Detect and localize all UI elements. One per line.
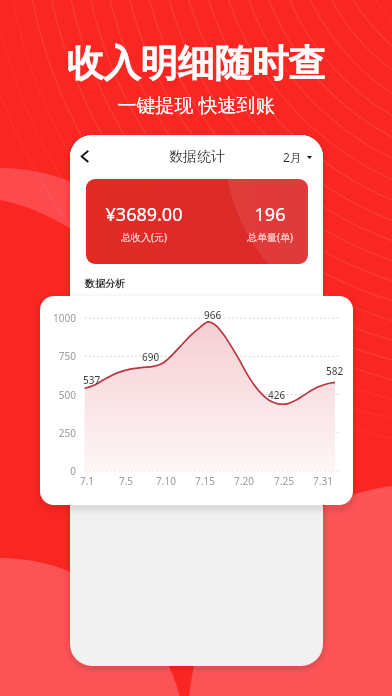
staticText: ¥3689.00	[86, 202, 204, 227]
staticText: 7.25	[264, 474, 304, 488]
staticText: 966	[204, 308, 222, 322]
staticText: 数据分析	[85, 277, 125, 290]
staticText: 7.15	[185, 474, 225, 488]
button[interactable]: 1000	[40, 296, 353, 505]
staticText: 7.20	[224, 474, 264, 488]
button[interactable]: ¥3689.00	[86, 179, 308, 264]
button[interactable]: Back	[70, 141, 100, 171]
staticText: 总单量(单)	[210, 230, 308, 244]
staticText: 7.5	[106, 474, 146, 488]
staticText: 537	[83, 373, 101, 387]
staticText: 582	[326, 364, 344, 378]
staticText: 426	[268, 388, 286, 402]
staticText: 0	[40, 464, 76, 478]
staticText: 250	[40, 426, 76, 440]
staticText: 690	[142, 350, 160, 364]
staticText: 1000	[40, 311, 76, 325]
staticText: 一键提现 快速到账	[0, 92, 392, 118]
button[interactable]: 2月	[283, 149, 312, 165]
staticText: 7.1	[67, 474, 107, 488]
staticText: 2月	[283, 149, 302, 165]
staticText: 196	[210, 202, 308, 227]
staticText: 数据统计	[169, 148, 225, 166]
staticText: 总收入(元)	[86, 230, 204, 244]
staticText: 7.10	[146, 474, 186, 488]
staticText: 收入明细随时查	[0, 40, 392, 87]
staticText: 750	[40, 349, 76, 363]
staticText: 7.31	[303, 474, 343, 488]
staticText: 500	[40, 388, 76, 402]
